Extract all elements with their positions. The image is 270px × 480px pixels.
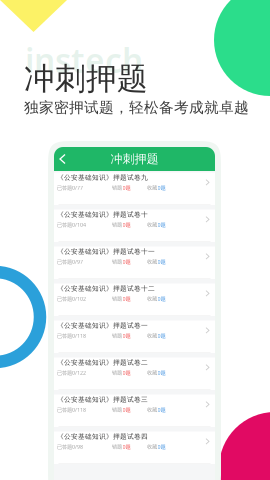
staticText: 错题 (112, 369, 122, 376)
staticText: 《公安基础知识》押题试卷二 (57, 358, 148, 367)
staticText: 收藏 (147, 332, 157, 339)
staticText: 0题 (157, 443, 165, 450)
staticText: 收藏 (147, 406, 157, 413)
staticText: 收藏 (147, 184, 157, 191)
staticText: 《公安基础知识》押题试卷一 (57, 321, 148, 330)
staticText: 0题 (122, 443, 130, 450)
button[interactable]: 《公安基础知识》押题试卷三 (54, 394, 215, 427)
staticText: 错题 (112, 332, 122, 339)
staticText: 已答题0/98 (57, 443, 83, 450)
staticText: 《公安基础知识》押题试卷四 (57, 432, 148, 441)
staticText: 冲刺押题 (110, 152, 158, 166)
staticText: 0题 (157, 369, 165, 376)
staticText: 0题 (122, 184, 130, 191)
button[interactable]: 《公安基础知识》押题试卷十 (54, 209, 215, 242)
staticText: 已答题0/122 (57, 369, 86, 376)
staticText: 0题 (157, 332, 165, 339)
staticText: 收藏 (147, 258, 157, 265)
button[interactable]: 《公安基础知识》押题试卷四 (54, 431, 215, 464)
staticText: 已答题0/97 (57, 258, 83, 265)
staticText: 已答题0/77 (57, 184, 83, 191)
button[interactable]: 返回 (54, 148, 71, 169)
staticText: 错题 (112, 406, 122, 413)
staticText: 0题 (122, 332, 130, 339)
staticText: 错题 (112, 221, 122, 228)
staticText: 0题 (157, 406, 165, 413)
staticText: 已答题0/118 (57, 406, 86, 413)
staticText: 0题 (122, 406, 130, 413)
button[interactable]: 《公安基础知识》押题试卷九 (54, 172, 215, 205)
staticText: instech (25, 38, 143, 82)
staticText: 0题 (122, 369, 130, 376)
staticText: 独家密押试题，轻松备考成就卓越 (24, 99, 249, 117)
staticText: 冲刺押题 (24, 60, 148, 98)
staticText: 错题 (112, 258, 122, 265)
staticText: 已答题0/118 (57, 332, 86, 339)
staticText: 《公安基础知识》押题试卷九 (57, 173, 148, 182)
staticText: 0题 (157, 184, 165, 191)
staticText: 已答题0/102 (57, 295, 86, 302)
button[interactable]: 《公安基础知识》押题试卷一 (54, 320, 215, 353)
staticText: 0题 (122, 258, 130, 265)
staticText: 0题 (122, 295, 130, 302)
staticText: 0题 (157, 221, 165, 228)
button[interactable]: 《公安基础知识》押题试卷十二 (54, 283, 215, 316)
staticText: 错题 (112, 295, 122, 302)
staticText: 收藏 (147, 221, 157, 228)
staticText: 《公安基础知识》押题试卷十二 (57, 284, 155, 293)
staticText: 《公安基础知识》押题试卷十一 (57, 247, 155, 256)
staticText: 0题 (157, 295, 165, 302)
button[interactable]: 《公安基础知识》押题试卷十一 (54, 246, 215, 279)
staticText: 收藏 (147, 443, 157, 450)
staticText: 错题 (112, 184, 122, 191)
staticText: 收藏 (147, 369, 157, 376)
staticText: 0题 (122, 221, 130, 228)
staticText: 《公安基础知识》押题试卷三 (57, 395, 148, 404)
staticText: 《公安基础知识》押题试卷十 (57, 210, 148, 219)
staticText: 错题 (112, 443, 122, 450)
button[interactable]: 《公安基础知识》押题试卷二 (54, 357, 215, 390)
staticText: 0题 (157, 258, 165, 265)
staticText: 收藏 (147, 295, 157, 302)
staticText: 已答题0/104 (57, 221, 86, 228)
